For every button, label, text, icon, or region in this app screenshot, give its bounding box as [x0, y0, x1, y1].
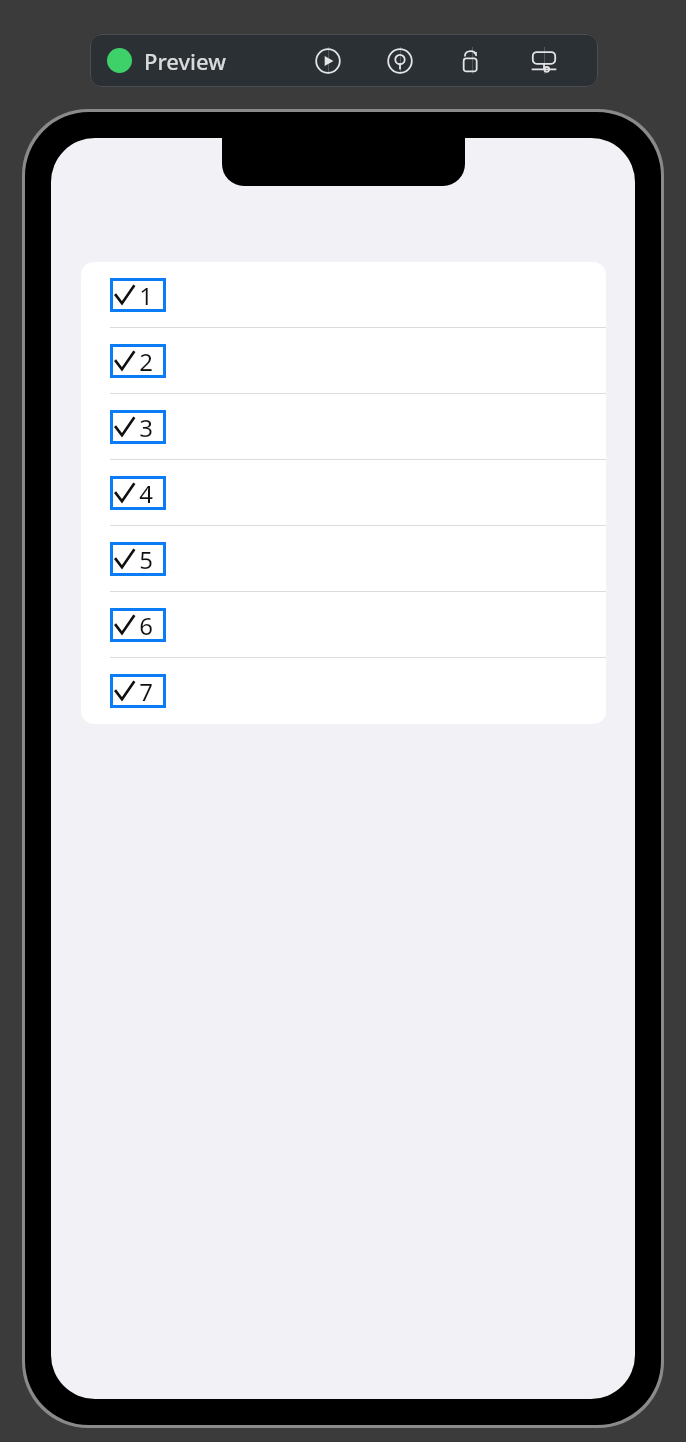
staticText: 1 — [139, 279, 153, 312]
button[interactable]: 5 — [81, 526, 606, 592]
staticText: 7 — [139, 675, 153, 708]
button[interactable]: Live preview — [454, 42, 490, 79]
button[interactable]: Play preview — [310, 42, 346, 79]
staticText: 2 — [139, 345, 153, 378]
button[interactable]: 3 — [81, 394, 606, 460]
staticText: 6 — [139, 609, 153, 642]
button[interactable]: Device settings — [526, 42, 562, 79]
button[interactable]: 4 — [81, 460, 606, 526]
button[interactable]: 7 — [81, 658, 606, 724]
button[interactable]: Preview — [107, 34, 226, 87]
button[interactable]: 1 — [81, 262, 606, 328]
button[interactable]: 6 — [81, 592, 606, 658]
staticText: 4 — [139, 477, 153, 510]
staticText: Preview — [144, 46, 226, 76]
staticText: 3 — [139, 411, 153, 444]
button[interactable]: Inspect preview — [382, 42, 418, 79]
staticText: 5 — [139, 543, 153, 576]
button[interactable]: 2 — [81, 328, 606, 394]
